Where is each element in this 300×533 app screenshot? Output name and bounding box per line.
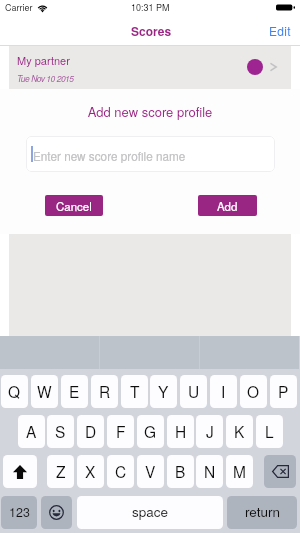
button[interactable]: return [227,496,297,529]
staticText: T [130,380,140,402]
button[interactable]: W [31,375,58,408]
button[interactable]: O [240,375,267,408]
button[interactable]: Emoji [41,496,72,529]
button[interactable]: space [77,496,223,529]
button[interactable]: F [107,415,134,448]
staticText: C [115,460,127,482]
button[interactable]: B [167,455,194,488]
button[interactable]: X [77,455,104,488]
staticText: Add new score profile [0,102,300,121]
staticText: Carrier [5,1,33,14]
button[interactable]: L [256,415,283,448]
staticText: U [188,380,200,402]
button[interactable]: Q [1,375,28,408]
staticText: V [145,460,156,482]
staticText: Add [217,198,238,214]
staticText: Enter new score profile name [33,148,186,165]
button[interactable]: 123 [1,496,37,529]
button[interactable]: Cancel [45,195,103,216]
button[interactable]: P [270,375,297,408]
staticText: My partner [17,52,70,68]
staticText: K [234,420,245,442]
button[interactable]: D [77,415,104,448]
staticText: O [247,380,260,402]
staticText: M [233,460,246,482]
button[interactable]: H [167,415,194,448]
button[interactable]: E [61,375,88,408]
button[interactable]: My partner [9,46,291,89]
button[interactable]: U [180,375,207,408]
button[interactable]: Edit [261,18,300,43]
staticText: 10:31 PM [131,1,170,14]
staticText: H [175,420,187,442]
button[interactable]: V [137,455,164,488]
staticText: I [221,380,226,402]
staticText: J [206,420,214,442]
button[interactable]: I [210,375,237,408]
button[interactable]: M [226,455,253,488]
staticText: A [26,420,37,442]
staticText: S [55,420,66,442]
button[interactable]: K [226,415,253,448]
staticText: G [144,420,157,442]
staticText: Z [56,460,66,482]
staticText: D [85,420,97,442]
staticText: X [85,460,96,482]
button[interactable]: Add [198,195,257,216]
button[interactable]: Z [47,455,74,488]
staticText: Edit [269,22,291,39]
button[interactable]: Enter new score profile name [26,136,275,172]
staticText: N [204,460,216,482]
staticText: Cancel [56,198,92,214]
staticText: P [278,380,289,402]
staticText: B [175,460,186,482]
staticText: E [69,380,80,402]
staticText: space [132,502,169,521]
button[interactable]: J [196,415,223,448]
button[interactable]: R [91,375,118,408]
button[interactable]: C [107,455,134,488]
button[interactable]: A [18,415,45,448]
staticText: Tue Nov 10 2015 [17,72,74,84]
staticText: Scores [131,22,172,39]
staticText: Y [158,380,169,402]
staticText: R [99,380,111,402]
staticText: L [265,420,274,442]
button[interactable]: Backspace [264,455,296,488]
staticText: return [245,502,280,521]
staticText: W [37,380,52,402]
button[interactable]: N [196,455,223,488]
button[interactable]: T [121,375,148,408]
button[interactable]: G [137,415,164,448]
button[interactable]: Y [150,375,177,408]
staticText: F [116,420,126,442]
button[interactable]: Shift [3,455,37,488]
staticText: 123 [9,503,30,521]
staticText: Q [8,380,21,402]
button[interactable]: S [47,415,74,448]
